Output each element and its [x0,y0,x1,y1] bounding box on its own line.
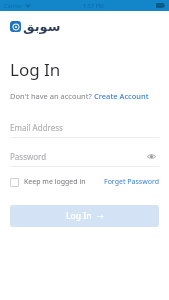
button[interactable]: Create Account [94,91,149,101]
button[interactable]: Log In [10,205,159,227]
button[interactable]: Keep me logged in [10,177,86,187]
staticText: Create Account [94,91,149,101]
staticText: Password [10,151,143,162]
button[interactable]: Forget Password [104,177,159,187]
staticText: Keep me logged in [24,177,86,187]
button[interactable]: Password [10,146,159,166]
button[interactable]: Show password [143,148,159,164]
button[interactable]: Email Address [10,117,159,138]
staticText: Don't have an account? [10,91,94,101]
staticText: Email Address [10,122,63,133]
staticText: 1:57 PM [83,2,104,9]
staticText: سوبق [23,19,61,34]
staticText: Forget Password [104,177,159,187]
staticText: Carrier [4,2,23,9]
staticText: Log In [10,58,61,81]
staticText: Log In [66,210,92,222]
